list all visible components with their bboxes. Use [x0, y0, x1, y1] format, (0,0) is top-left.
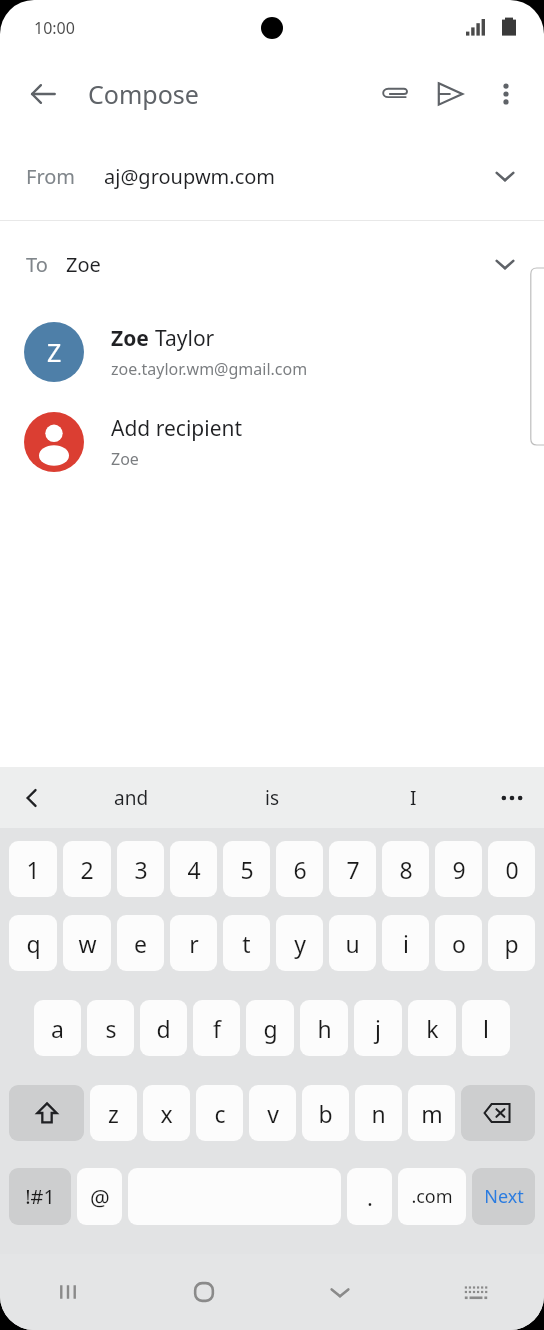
staticText: zoe.taylor.wm@gmail.com: [111, 358, 308, 380]
staticText: y: [294, 928, 306, 959]
staticText: g: [263, 1013, 278, 1044]
button[interactable]: 9: [435, 841, 482, 897]
staticText: l: [483, 1013, 489, 1044]
button[interactable]: 4: [170, 841, 217, 897]
button[interactable]: 7: [329, 841, 376, 897]
button[interactable]: 2: [63, 841, 111, 897]
button[interactable]: Switch keyboard: [408, 1254, 544, 1330]
staticText: u: [345, 928, 360, 959]
button[interactable]: !#1: [9, 1168, 71, 1225]
button[interactable]: is: [202, 767, 343, 828]
button[interactable]: q: [9, 915, 57, 971]
staticText: r: [189, 928, 199, 959]
staticText: m: [421, 1098, 443, 1129]
staticText: is: [265, 785, 280, 811]
staticText: Zoe: [111, 448, 139, 470]
staticText: 7: [346, 854, 360, 885]
button[interactable]: g: [246, 1000, 294, 1056]
staticText: 1: [26, 854, 40, 885]
button[interactable]: Send: [422, 66, 478, 122]
staticText: b: [318, 1098, 333, 1129]
staticText: n: [371, 1098, 386, 1129]
button[interactable]: h: [300, 1000, 348, 1056]
button[interactable]: @: [77, 1168, 122, 1225]
button[interactable]: Recents: [0, 1254, 136, 1330]
button[interactable]: From: [0, 132, 544, 220]
staticText: 9: [452, 854, 466, 885]
button[interactable]: Shift: [9, 1085, 84, 1141]
button[interactable]: 6: [276, 841, 323, 897]
button[interactable]: l: [462, 1000, 510, 1056]
button[interactable]: 0: [488, 841, 535, 897]
staticText: 2: [80, 854, 94, 885]
staticText: s: [105, 1013, 117, 1044]
button[interactable]: To: [0, 221, 544, 307]
button[interactable]: s: [87, 1000, 134, 1056]
staticText: I: [410, 785, 417, 811]
staticText: Add recipient: [111, 414, 243, 443]
staticText: To: [26, 251, 48, 278]
staticText: t: [242, 928, 251, 959]
button[interactable]: 3: [117, 841, 164, 897]
button[interactable]: u: [329, 915, 376, 971]
staticText: 4: [187, 854, 201, 885]
button[interactable]: I: [343, 767, 484, 828]
button[interactable]: z: [90, 1085, 137, 1141]
staticText: w: [78, 928, 97, 959]
button[interactable]: .com: [398, 1168, 466, 1225]
staticText: 10:00: [34, 17, 75, 39]
button[interactable]: i: [382, 915, 429, 971]
staticText: 3: [134, 854, 148, 885]
button[interactable]: and: [60, 767, 202, 828]
button[interactable]: Home: [136, 1254, 272, 1330]
button[interactable]: e: [117, 915, 164, 971]
button[interactable]: Z: [0, 307, 544, 397]
button[interactable]: 1: [9, 841, 57, 897]
button[interactable]: .: [347, 1168, 392, 1225]
staticText: Taylor: [155, 324, 215, 353]
button[interactable]: x: [143, 1085, 190, 1141]
button[interactable]: f: [193, 1000, 240, 1056]
staticText: .com: [411, 1184, 453, 1209]
button[interactable]: b: [302, 1085, 349, 1141]
button[interactable]: 5: [223, 841, 270, 897]
button[interactable]: c: [196, 1085, 243, 1141]
button[interactable]: More: [488, 774, 536, 822]
button[interactable]: Previous: [8, 774, 56, 822]
button[interactable]: v: [249, 1085, 296, 1141]
button[interactable]: More options: [478, 66, 534, 122]
button[interactable]: a: [34, 1000, 81, 1056]
staticText: i: [403, 928, 409, 959]
button[interactable]: Back: [14, 65, 72, 123]
staticText: Zoe: [111, 324, 155, 353]
button[interactable]: r: [170, 915, 217, 971]
staticText: aj@groupwm.com: [104, 163, 276, 190]
button[interactable]: y: [276, 915, 323, 971]
button[interactable]: o: [435, 915, 482, 971]
button[interactable]: t: [223, 915, 270, 971]
staticText: Z: [47, 335, 62, 369]
staticText: From: [26, 163, 76, 190]
button[interactable]: p: [488, 915, 535, 971]
staticText: e: [134, 928, 147, 959]
staticText: a: [51, 1013, 64, 1044]
button[interactable]: j: [354, 1000, 402, 1056]
button[interactable]: Hide keyboard: [272, 1254, 408, 1330]
staticText: f: [213, 1013, 221, 1044]
button[interactable]: m: [408, 1085, 455, 1141]
button[interactable]: k: [408, 1000, 456, 1056]
button[interactable]: Next: [472, 1168, 535, 1225]
button[interactable]: 8: [382, 841, 429, 897]
staticText: 0: [505, 854, 519, 885]
staticText: Compose: [88, 77, 199, 111]
button[interactable]: n: [355, 1085, 402, 1141]
staticText: @: [90, 1182, 110, 1212]
button[interactable]: d: [140, 1000, 187, 1056]
staticText: k: [426, 1013, 439, 1044]
button[interactable]: Attach file: [366, 66, 422, 122]
button[interactable]: w: [63, 915, 111, 971]
staticText: v: [267, 1098, 279, 1129]
button[interactable]: Add recipient: [0, 397, 544, 487]
button[interactable]: Backspace: [461, 1085, 535, 1141]
